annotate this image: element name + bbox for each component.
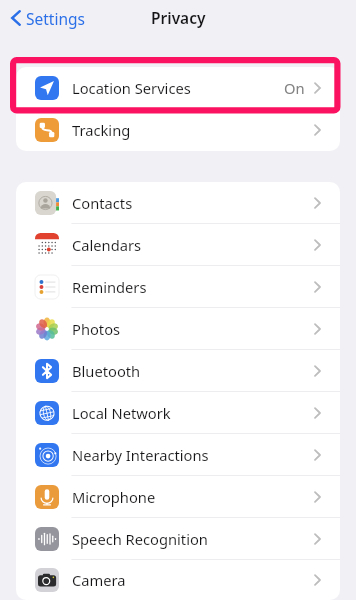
staticText: Camera [72, 570, 126, 590]
staticText: Nearby Interactions [72, 445, 209, 465]
staticText: Photos [72, 319, 121, 339]
button[interactable]: Nearby Interactions [16, 434, 340, 476]
button[interactable]: Bluetooth [16, 350, 340, 392]
button[interactable]: Location Services [16, 67, 340, 109]
button[interactable]: Photos [16, 308, 340, 350]
staticText: Speech Recognition [72, 529, 208, 549]
button[interactable]: Microphone [16, 476, 340, 518]
staticText: Contacts [72, 193, 133, 213]
staticText: Calendars [72, 235, 142, 255]
staticText: Location Services [72, 78, 191, 98]
button[interactable]: Local Network [16, 392, 340, 434]
button[interactable]: Camera [16, 560, 340, 600]
staticText: On [284, 78, 305, 98]
staticText: Local Network [72, 403, 171, 423]
staticText: Bluetooth [72, 361, 141, 381]
button[interactable]: Tracking [16, 109, 340, 151]
staticText: Tracking [72, 120, 131, 140]
button[interactable]: Calendars [16, 224, 340, 266]
button[interactable]: Contacts [16, 182, 340, 224]
staticText: Microphone [72, 487, 156, 507]
staticText: Settings [26, 8, 85, 29]
staticText: Reminders [72, 277, 147, 297]
button[interactable]: Speech Recognition [16, 518, 340, 560]
staticText: Privacy [151, 7, 206, 28]
button[interactable]: Reminders [16, 266, 340, 308]
button[interactable]: Settings [0, 0, 95, 36]
